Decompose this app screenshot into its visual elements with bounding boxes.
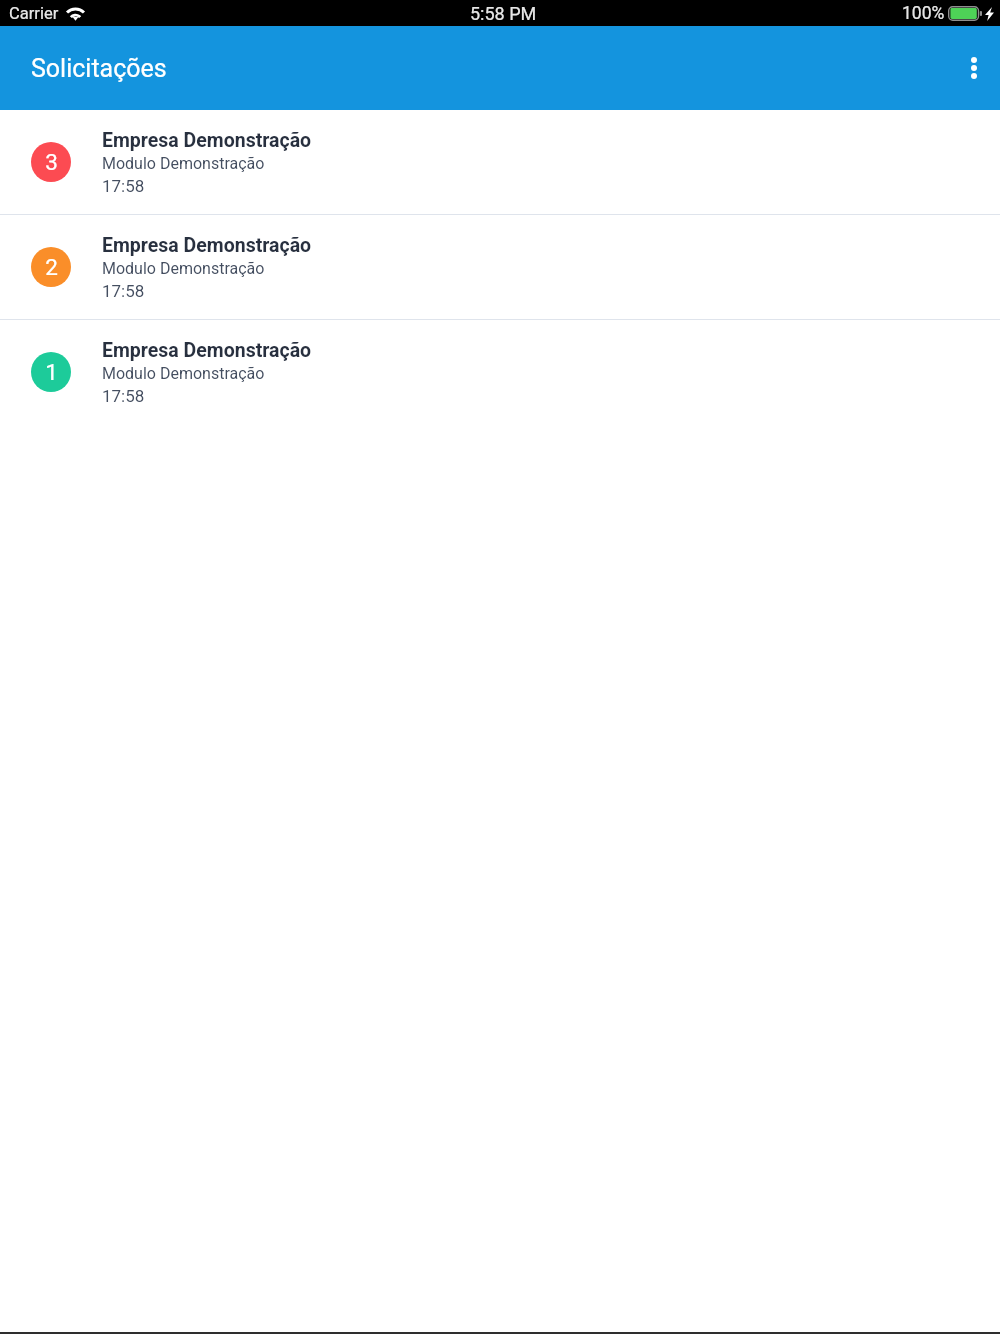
- button[interactable]: More options: [950, 44, 998, 92]
- staticText: 17:58: [102, 176, 145, 196]
- staticText: 100%: [902, 3, 945, 24]
- staticText: Empresa Demonstração: [102, 339, 312, 362]
- staticText: Carrier: [9, 4, 59, 23]
- staticText: Solicitações: [31, 54, 167, 83]
- staticText: Modulo Demonstração: [102, 154, 265, 173]
- staticText: Modulo Demonstração: [102, 259, 265, 278]
- staticText: 17:58: [102, 386, 145, 406]
- button[interactable]: 3: [0, 110, 1000, 214]
- staticText: 2: [45, 254, 58, 280]
- staticText: 5:58 PM: [470, 3, 537, 24]
- staticText: 17:58: [102, 281, 145, 301]
- staticText: Empresa Demonstração: [102, 234, 312, 257]
- staticText: Modulo Demonstração: [102, 364, 265, 383]
- button[interactable]: 1: [0, 320, 1000, 424]
- button[interactable]: 2: [0, 215, 1000, 319]
- staticText: 1: [45, 359, 58, 385]
- staticText: Empresa Demonstração: [102, 129, 312, 152]
- staticText: 3: [45, 149, 58, 175]
